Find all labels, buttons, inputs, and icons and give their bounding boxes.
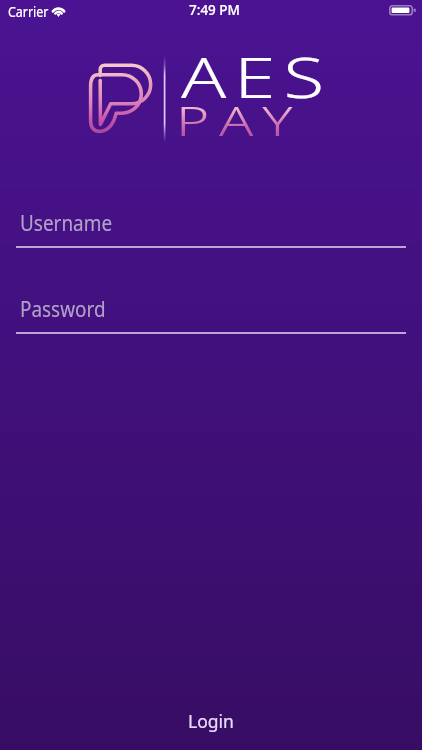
button[interactable]: Login bbox=[0, 688, 422, 750]
button[interactable]: Username bbox=[0, 206, 422, 248]
staticText: 7:49 PM bbox=[189, 1, 240, 19]
staticText: AES bbox=[181, 38, 333, 114]
staticText: Login bbox=[188, 709, 234, 733]
staticText: PAY bbox=[176, 92, 306, 148]
staticText: Password bbox=[20, 294, 106, 323]
staticText: Username bbox=[20, 208, 112, 237]
staticText: Carrier bbox=[8, 3, 48, 21]
button[interactable]: Password bbox=[0, 292, 422, 334]
